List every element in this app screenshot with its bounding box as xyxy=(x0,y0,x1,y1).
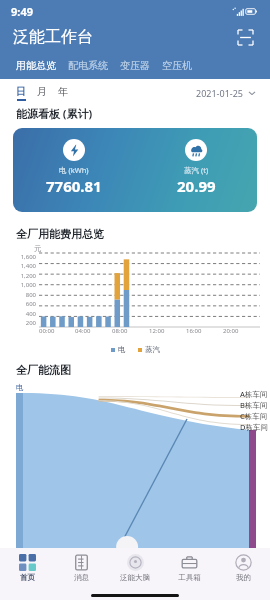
staticText: 年 xyxy=(58,85,68,98)
staticText: 9:49 xyxy=(11,4,33,19)
staticText: 20:00 xyxy=(223,327,239,335)
staticText: 1,400 xyxy=(20,262,36,270)
staticText: A栋车间 xyxy=(240,389,268,399)
staticText: 我的 xyxy=(236,573,251,582)
staticText: 变压器 xyxy=(120,59,150,72)
button[interactable]: 变压器 xyxy=(114,55,156,76)
staticText: 首页 xyxy=(20,573,35,582)
staticText: 空压机 xyxy=(162,59,192,72)
button[interactable]: 泛能大脑 xyxy=(108,551,162,600)
staticText: 配电系统 xyxy=(68,59,108,72)
staticText: 16:00 xyxy=(186,327,202,335)
staticText: 月 xyxy=(37,85,47,98)
staticText: 800 xyxy=(25,291,36,299)
button[interactable]: 日 xyxy=(16,85,26,101)
button[interactable]: 月 xyxy=(37,85,47,101)
staticText: 电 (kWh) xyxy=(59,165,89,175)
staticText: 蒸汽 xyxy=(145,345,160,354)
button[interactable]: 用能总览 xyxy=(10,55,62,76)
staticText: 400 xyxy=(25,310,36,318)
staticText: B栋车间 xyxy=(240,400,268,410)
staticText: C栋车间 xyxy=(240,411,268,421)
staticText: D栋车间 xyxy=(240,422,268,432)
staticText: 04:00 xyxy=(75,327,91,335)
button[interactable]: Scan QR code xyxy=(233,25,257,49)
staticText: 元 xyxy=(34,244,42,253)
button[interactable]: 我的 xyxy=(216,551,270,600)
staticText: 200 xyxy=(25,319,36,327)
staticText: 全厂用能费用总览 xyxy=(16,227,104,241)
button[interactable]: 配电系统 xyxy=(62,55,114,76)
staticText: 能源看板 (累计) xyxy=(16,106,93,121)
staticText: 1,600 xyxy=(20,253,36,261)
staticText: 7760.81 xyxy=(46,176,102,196)
button[interactable]: 2021-01-25 xyxy=(196,87,256,99)
button[interactable]: 年 xyxy=(58,85,68,101)
staticText: 工具箱 xyxy=(178,573,201,582)
staticText: 2021-01-25 xyxy=(196,87,243,99)
staticText: 消息 xyxy=(74,573,89,582)
button[interactable]: 电 (kWh) xyxy=(13,128,257,212)
staticText: 蒸汽 (t) xyxy=(184,165,209,175)
staticText: 00:00 xyxy=(39,327,55,335)
button[interactable]: 首页 xyxy=(0,551,54,600)
staticText: 20.99 xyxy=(177,176,216,196)
staticText: 用能总览 xyxy=(16,59,56,72)
staticText: 1,200 xyxy=(20,272,36,280)
button[interactable]: 空压机 xyxy=(156,55,198,76)
staticText: 电 xyxy=(118,345,126,354)
staticText: 全厂能流图 xyxy=(16,363,71,377)
staticText: 1,000 xyxy=(20,281,36,289)
staticText: 600 xyxy=(25,300,36,308)
staticText: 电 xyxy=(16,383,24,392)
staticText: 泛能大脑 xyxy=(120,573,150,582)
staticText: 12:00 xyxy=(149,327,165,335)
staticText: 日 xyxy=(16,85,26,98)
button[interactable]: 消息 xyxy=(54,551,108,600)
staticText: 泛能工作台 xyxy=(13,27,93,47)
button[interactable]: 工具箱 xyxy=(162,551,216,600)
staticText: 08:00 xyxy=(112,327,128,335)
